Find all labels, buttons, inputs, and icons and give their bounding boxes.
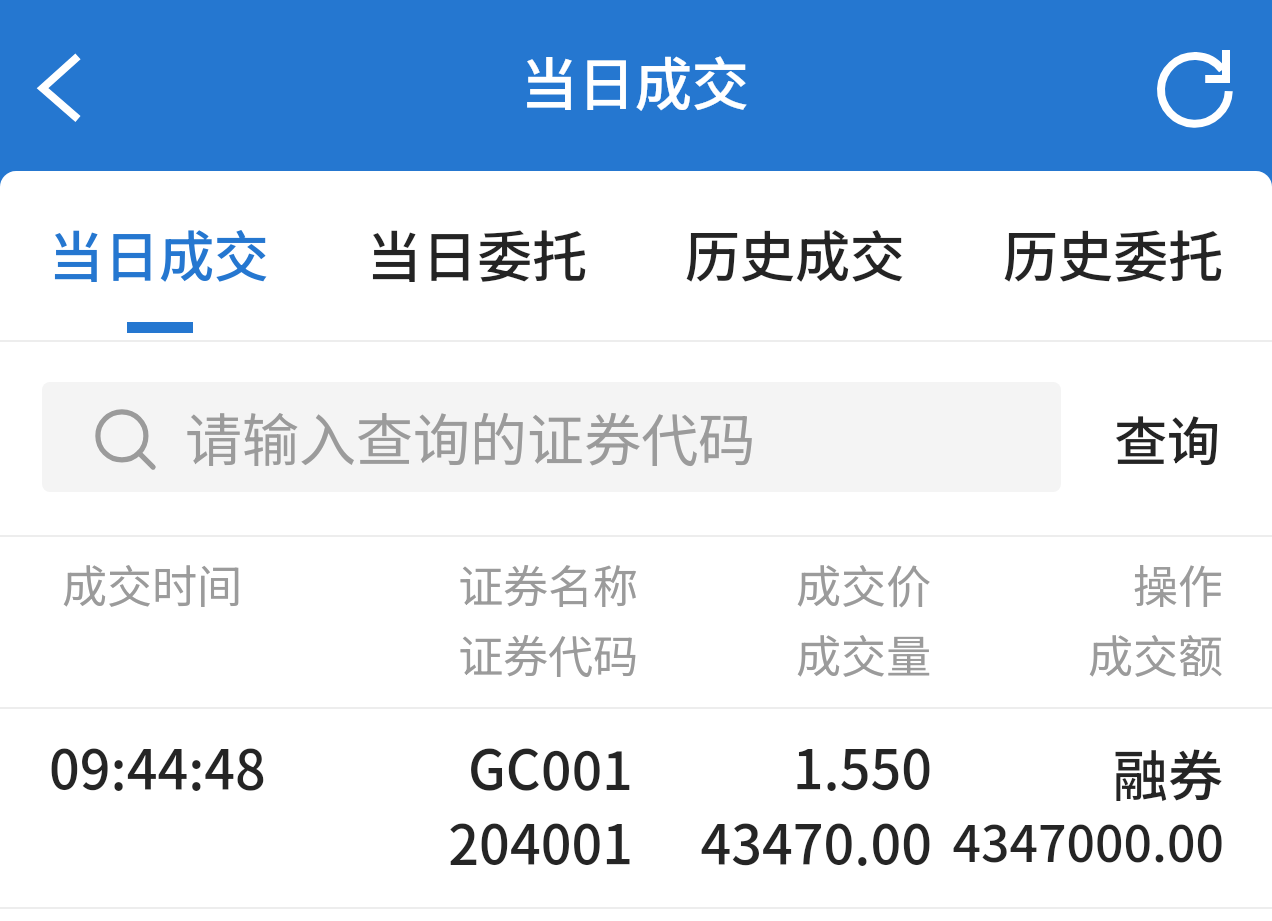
button[interactable]: 09:44:48 [0, 709, 1272, 907]
staticText: 成交量 [0, 621, 931, 686]
staticText: 成交时间 [62, 551, 243, 616]
button[interactable]: 当日成交 [0, 171, 318, 340]
staticText: 历史成交 [685, 213, 906, 293]
staticText: 证券代码 [0, 621, 638, 686]
staticText: 成交价 [0, 551, 931, 616]
staticText: 历史委托 [1003, 213, 1224, 293]
staticText: 当日委托 [367, 213, 588, 293]
staticText: 4347000.00 [0, 804, 1224, 876]
staticText: 成交额 [0, 621, 1223, 686]
button[interactable]: 查询 [1061, 342, 1272, 535]
staticText: 查询 [1114, 400, 1220, 477]
staticText: 当日成交 [49, 213, 270, 293]
staticText: 09:44:48 [49, 727, 266, 805]
staticText: 1.550 [0, 727, 932, 805]
staticText: 204001 [0, 802, 633, 880]
button[interactable]: Back [16, 44, 104, 132]
staticText: 当日成交 [521, 39, 749, 122]
staticText: 请输入查询的证券代码 [185, 395, 755, 478]
staticText: 43470.00 [0, 802, 932, 880]
staticText: 证券名称 [0, 551, 638, 616]
button[interactable]: 历史委托 [954, 171, 1272, 340]
staticText: GC001 [0, 727, 633, 805]
staticText: 操作 [0, 551, 1223, 616]
staticText: 融券 [0, 732, 1223, 812]
button[interactable]: Refresh [1150, 44, 1240, 134]
button[interactable]: 历史成交 [636, 171, 954, 340]
button[interactable]: 请输入查询的证券代码 [42, 382, 1061, 492]
button[interactable]: 当日委托 [318, 171, 636, 340]
